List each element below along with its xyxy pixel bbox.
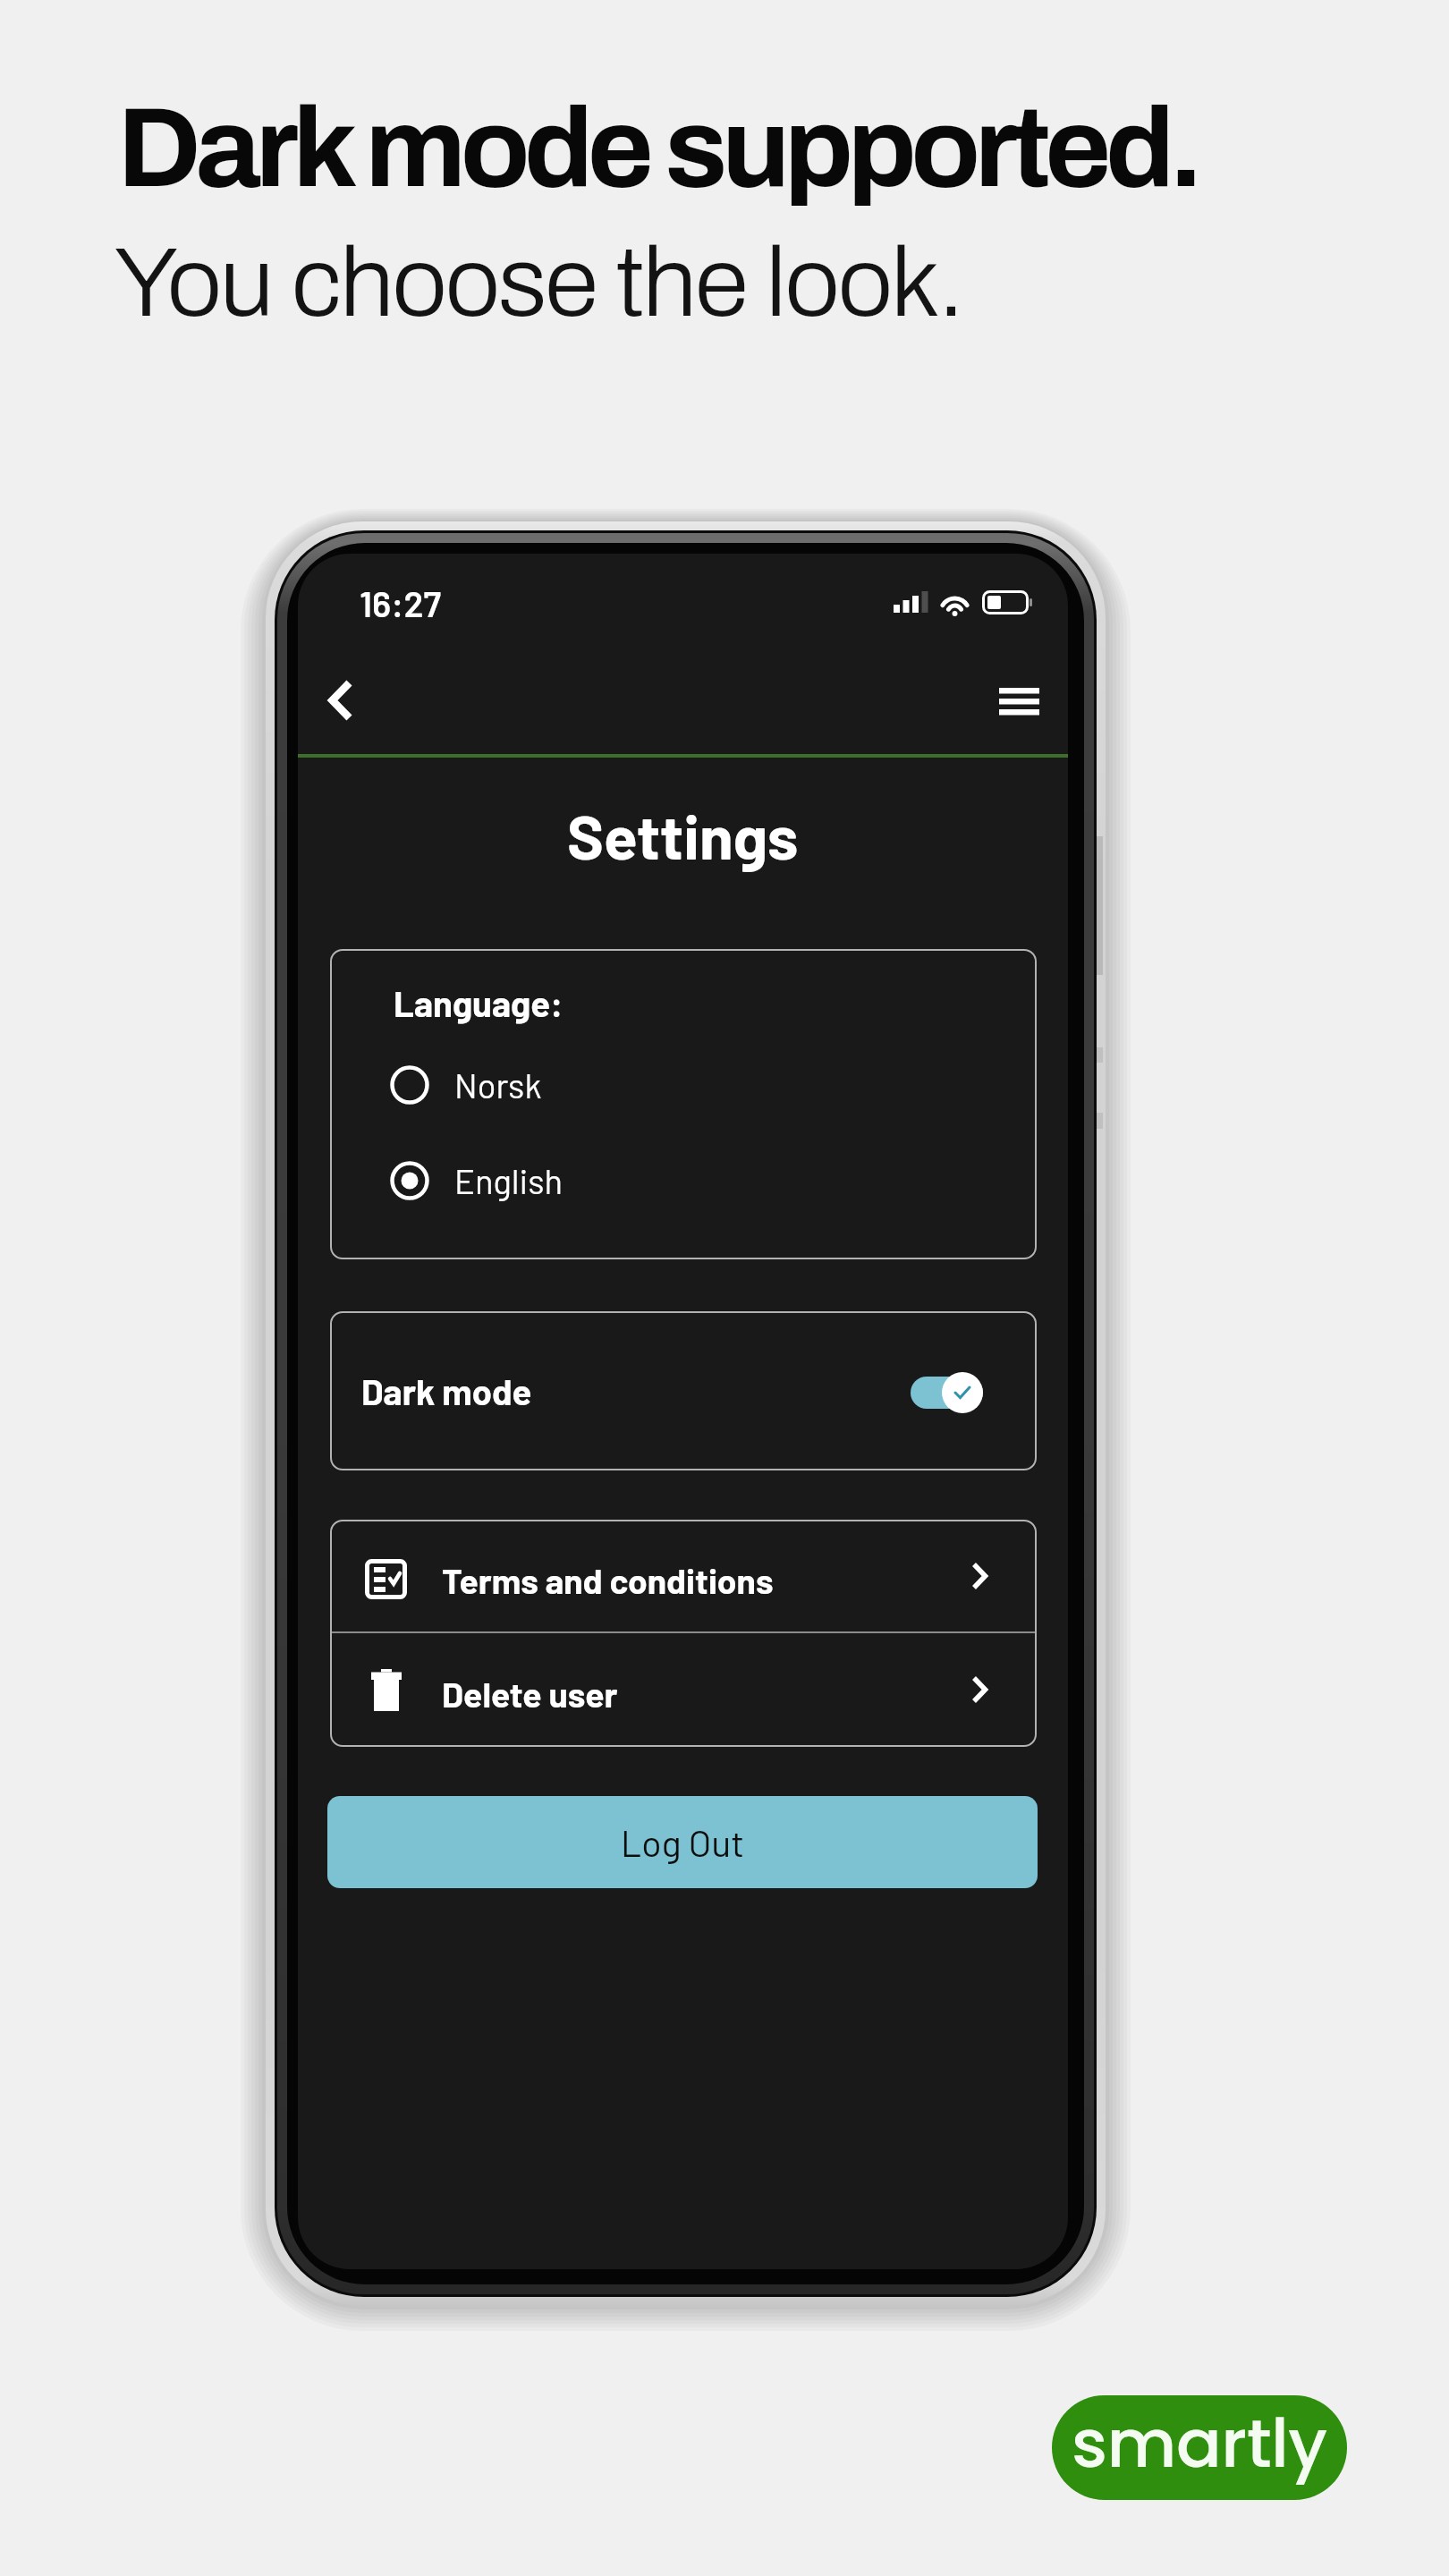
staticText: You choose the look. — [114, 229, 963, 336]
staticText: smartly — [1072, 2396, 1327, 2490]
button[interactable]: smartly — [1052, 2395, 1347, 2500]
staticText: English — [454, 1160, 563, 1201]
staticText: Norsk — [454, 1064, 542, 1106]
button[interactable]: Norsk — [389, 1055, 542, 1115]
button[interactable]: English — [389, 1150, 563, 1211]
button[interactable]: Back — [303, 663, 377, 738]
button[interactable]: Terms and conditions — [330, 1520, 1037, 1631]
staticText: Language: — [394, 981, 563, 1024]
staticText: Settings — [567, 798, 799, 872]
staticText: Dark mode supported. — [117, 86, 1199, 209]
staticText: Terms and conditions — [442, 1559, 774, 1601]
button[interactable]: Dark mode toggle — [899, 1363, 996, 1419]
staticText: Delete user — [442, 1673, 618, 1715]
button[interactable]: Log Out — [327, 1796, 1038, 1888]
staticText: 16:27 — [360, 581, 442, 624]
button[interactable]: Delete user — [330, 1633, 1037, 1747]
staticText: Dark mode — [361, 1369, 532, 1412]
staticText: Log Out — [621, 1820, 745, 1864]
button[interactable]: Menu — [979, 665, 1058, 737]
